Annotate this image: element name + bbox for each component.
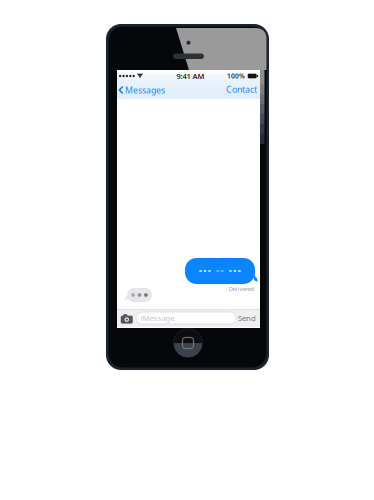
staticText: Messages	[125, 84, 165, 96]
button[interactable]: Contact	[226, 83, 260, 97]
staticText: Contact	[226, 83, 257, 95]
staticText: 100%	[227, 71, 245, 81]
staticText: Send	[238, 313, 256, 323]
staticText: 9:41 AM	[176, 71, 204, 81]
staticText: iMessage	[140, 313, 174, 323]
button[interactable]: Messages	[117, 80, 165, 100]
button[interactable]: Camera	[118, 309, 136, 327]
staticText: Delivered	[228, 284, 254, 293]
button[interactable]: Send	[236, 309, 258, 327]
